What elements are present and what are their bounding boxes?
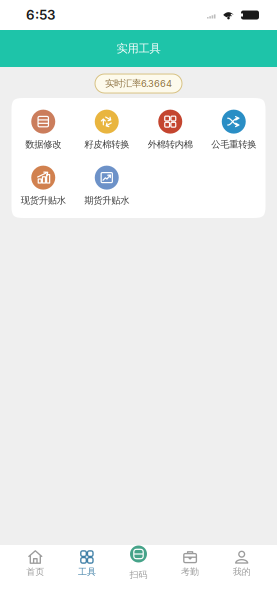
staticText: 考勤	[181, 566, 199, 577]
button[interactable]: 公毛重转换	[202, 108, 265, 152]
button[interactable]: 现货升贴水	[11, 164, 75, 208]
staticText: 现货升贴水	[21, 195, 66, 206]
staticText: 外棉转内棉	[148, 139, 193, 150]
staticText: 我的	[233, 566, 251, 577]
button[interactable]: 籽皮棉转换	[75, 108, 138, 152]
staticText: 籽皮棉转换	[84, 139, 129, 150]
staticText: 实时汇率6.3664	[105, 78, 172, 89]
staticText: 扫码	[129, 569, 147, 580]
button[interactable]: 扫码	[113, 545, 164, 600]
staticText: 首页	[26, 566, 44, 577]
button[interactable]: 实时汇率6.3664	[95, 74, 182, 93]
button[interactable]: 工具	[61, 545, 113, 600]
staticText: 期货升贴水	[84, 195, 129, 206]
staticText: 公毛重转换	[211, 139, 256, 150]
button[interactable]: 考勤	[164, 545, 216, 600]
button[interactable]: 数据修改	[11, 108, 75, 152]
button[interactable]: 首页	[9, 545, 61, 600]
button[interactable]: 我的	[216, 545, 267, 600]
staticText: 工具	[78, 566, 96, 577]
button[interactable]: 期货升贴水	[75, 164, 138, 208]
staticText: 6:53	[26, 7, 55, 23]
staticText: 数据修改	[25, 139, 61, 150]
staticText: 实用工具	[116, 41, 160, 56]
button[interactable]: 外棉转内棉	[138, 108, 202, 152]
